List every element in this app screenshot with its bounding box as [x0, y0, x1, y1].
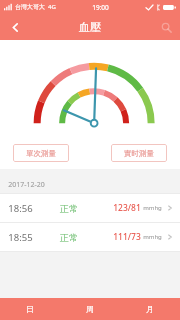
staticText: 台灣大哥大 — [15, 3, 45, 11]
button[interactable]: Search — [152, 14, 180, 40]
staticText: 日 — [26, 304, 34, 314]
button[interactable]: 單次測量 — [13, 144, 69, 162]
staticText: 123/81 — [113, 202, 141, 214]
staticText: 正常 — [60, 203, 78, 214]
staticText: mmhg — [143, 204, 162, 212]
button[interactable]: 月 — [120, 298, 180, 320]
staticText: 18:56 — [8, 202, 33, 215]
button[interactable]: Back — [0, 14, 30, 40]
button[interactable]: 周 — [60, 298, 120, 320]
staticText: 2017-12-20 — [8, 180, 45, 190]
staticText: 單次測量 — [26, 149, 56, 158]
button[interactable]: 18:56 — [0, 194, 180, 222]
button[interactable]: 日 — [0, 298, 60, 320]
staticText: 正常 — [60, 232, 78, 243]
button[interactable]: 18:55 — [0, 223, 180, 251]
staticText: 月 — [146, 304, 154, 314]
staticText: 周 — [86, 304, 94, 314]
staticText: 血壓 — [79, 20, 101, 34]
staticText: 實时測量 — [124, 149, 154, 158]
button[interactable]: 實时測量 — [111, 144, 167, 162]
staticText: mmhg — [143, 233, 162, 241]
staticText: 111/73 — [113, 231, 141, 243]
staticText: 19:00 — [92, 3, 109, 12]
staticText: 18:55 — [8, 231, 33, 244]
staticText: 4G — [48, 3, 56, 11]
